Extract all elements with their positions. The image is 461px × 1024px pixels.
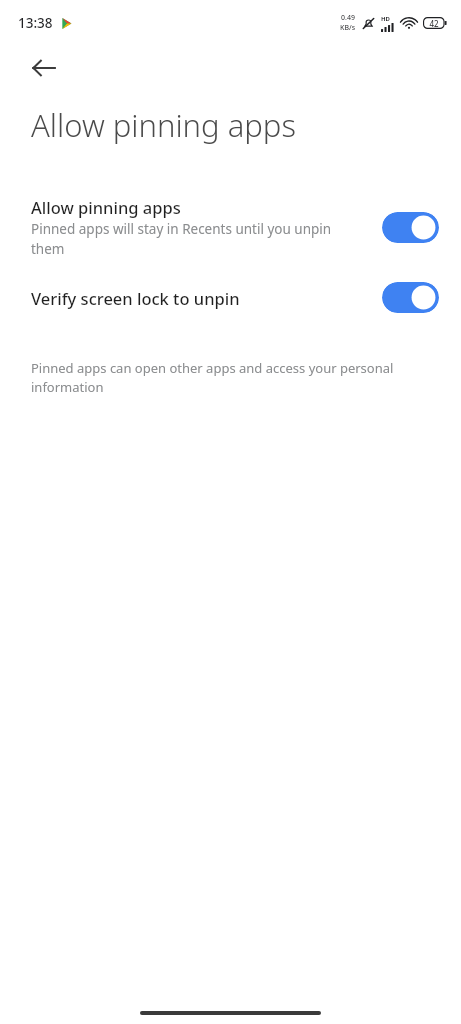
- button[interactable]: Allow pinning apps: [0, 192, 461, 262]
- staticText: KB/s: [340, 23, 356, 33]
- staticText: Allow pinning apps: [31, 104, 296, 146]
- staticText: Verify screen lock to unpin: [31, 287, 240, 309]
- button[interactable]: Toggle: [382, 282, 439, 313]
- staticText: HD: [381, 15, 390, 23]
- button[interactable]: Verify screen lock to unpin: [0, 278, 461, 317]
- button[interactable]: Toggle: [382, 212, 439, 243]
- staticText: 42: [429, 18, 439, 29]
- button[interactable]: Back: [22, 46, 66, 90]
- staticText: 0.49: [341, 13, 355, 23]
- staticText: Allow pinning apps: [31, 196, 181, 218]
- staticText: Pinned apps can open other apps and acce…: [31, 359, 431, 396]
- staticText: Pinned apps will stay in Recents until y…: [31, 220, 364, 258]
- staticText: 13:38: [18, 14, 53, 32]
